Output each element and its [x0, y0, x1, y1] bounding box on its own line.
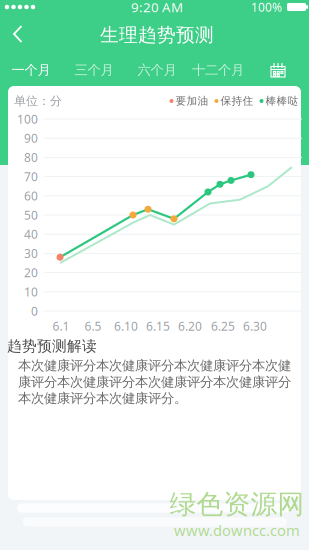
staticText: 保持住 [220, 94, 253, 107]
staticText: 100% [251, 0, 282, 15]
staticText: 六个月 [137, 62, 176, 78]
staticText: 6.25 [211, 318, 235, 334]
button[interactable]: 一个月 [4, 59, 58, 81]
staticText: 9:20 AM [131, 0, 183, 16]
button[interactable]: 三个月 [67, 59, 121, 81]
staticText: 6.30 [243, 318, 267, 334]
staticText: 0 [31, 303, 38, 319]
staticText: www.downcc.com [174, 521, 300, 540]
staticText: 50 [24, 207, 38, 223]
staticText: 棒棒哒 [265, 94, 298, 107]
staticText: 本次健康评分本次健康评分本次健康评分本次健康评分本次健康评分本次健康评分本次健康… [18, 357, 291, 406]
staticText: 6.20 [178, 318, 202, 334]
staticText: 6.1 [52, 318, 69, 334]
staticText: 30 [24, 245, 38, 261]
button[interactable]: 六个月 [130, 59, 184, 81]
staticText: 6.10 [114, 318, 138, 334]
staticText: 三个月 [74, 62, 113, 78]
button[interactable]: Calendar [263, 58, 293, 82]
staticText: 80 [24, 149, 38, 165]
staticText: 单位：分 [14, 94, 62, 108]
staticText: 要加油 [175, 94, 208, 107]
staticText: 100 [17, 111, 38, 127]
staticText: 90 [24, 130, 38, 146]
staticText: 6.5 [84, 318, 101, 334]
staticText: 6.15 [146, 318, 170, 334]
staticText: 一个月 [11, 62, 50, 78]
staticText: 10 [24, 284, 38, 300]
staticText: 40 [24, 226, 38, 242]
staticText: 十二个月 [192, 62, 244, 78]
staticText: 生理趋势预测 [100, 23, 214, 46]
button[interactable]: 十二个月 [185, 59, 251, 81]
button[interactable]: Back [0, 16, 36, 52]
staticText: 趋势预测解读 [7, 337, 97, 355]
staticText: 70 [24, 169, 38, 184]
staticText: 60 [24, 188, 38, 204]
staticText: 绿色资源网 [169, 488, 304, 521]
staticText: 20 [24, 265, 38, 280]
